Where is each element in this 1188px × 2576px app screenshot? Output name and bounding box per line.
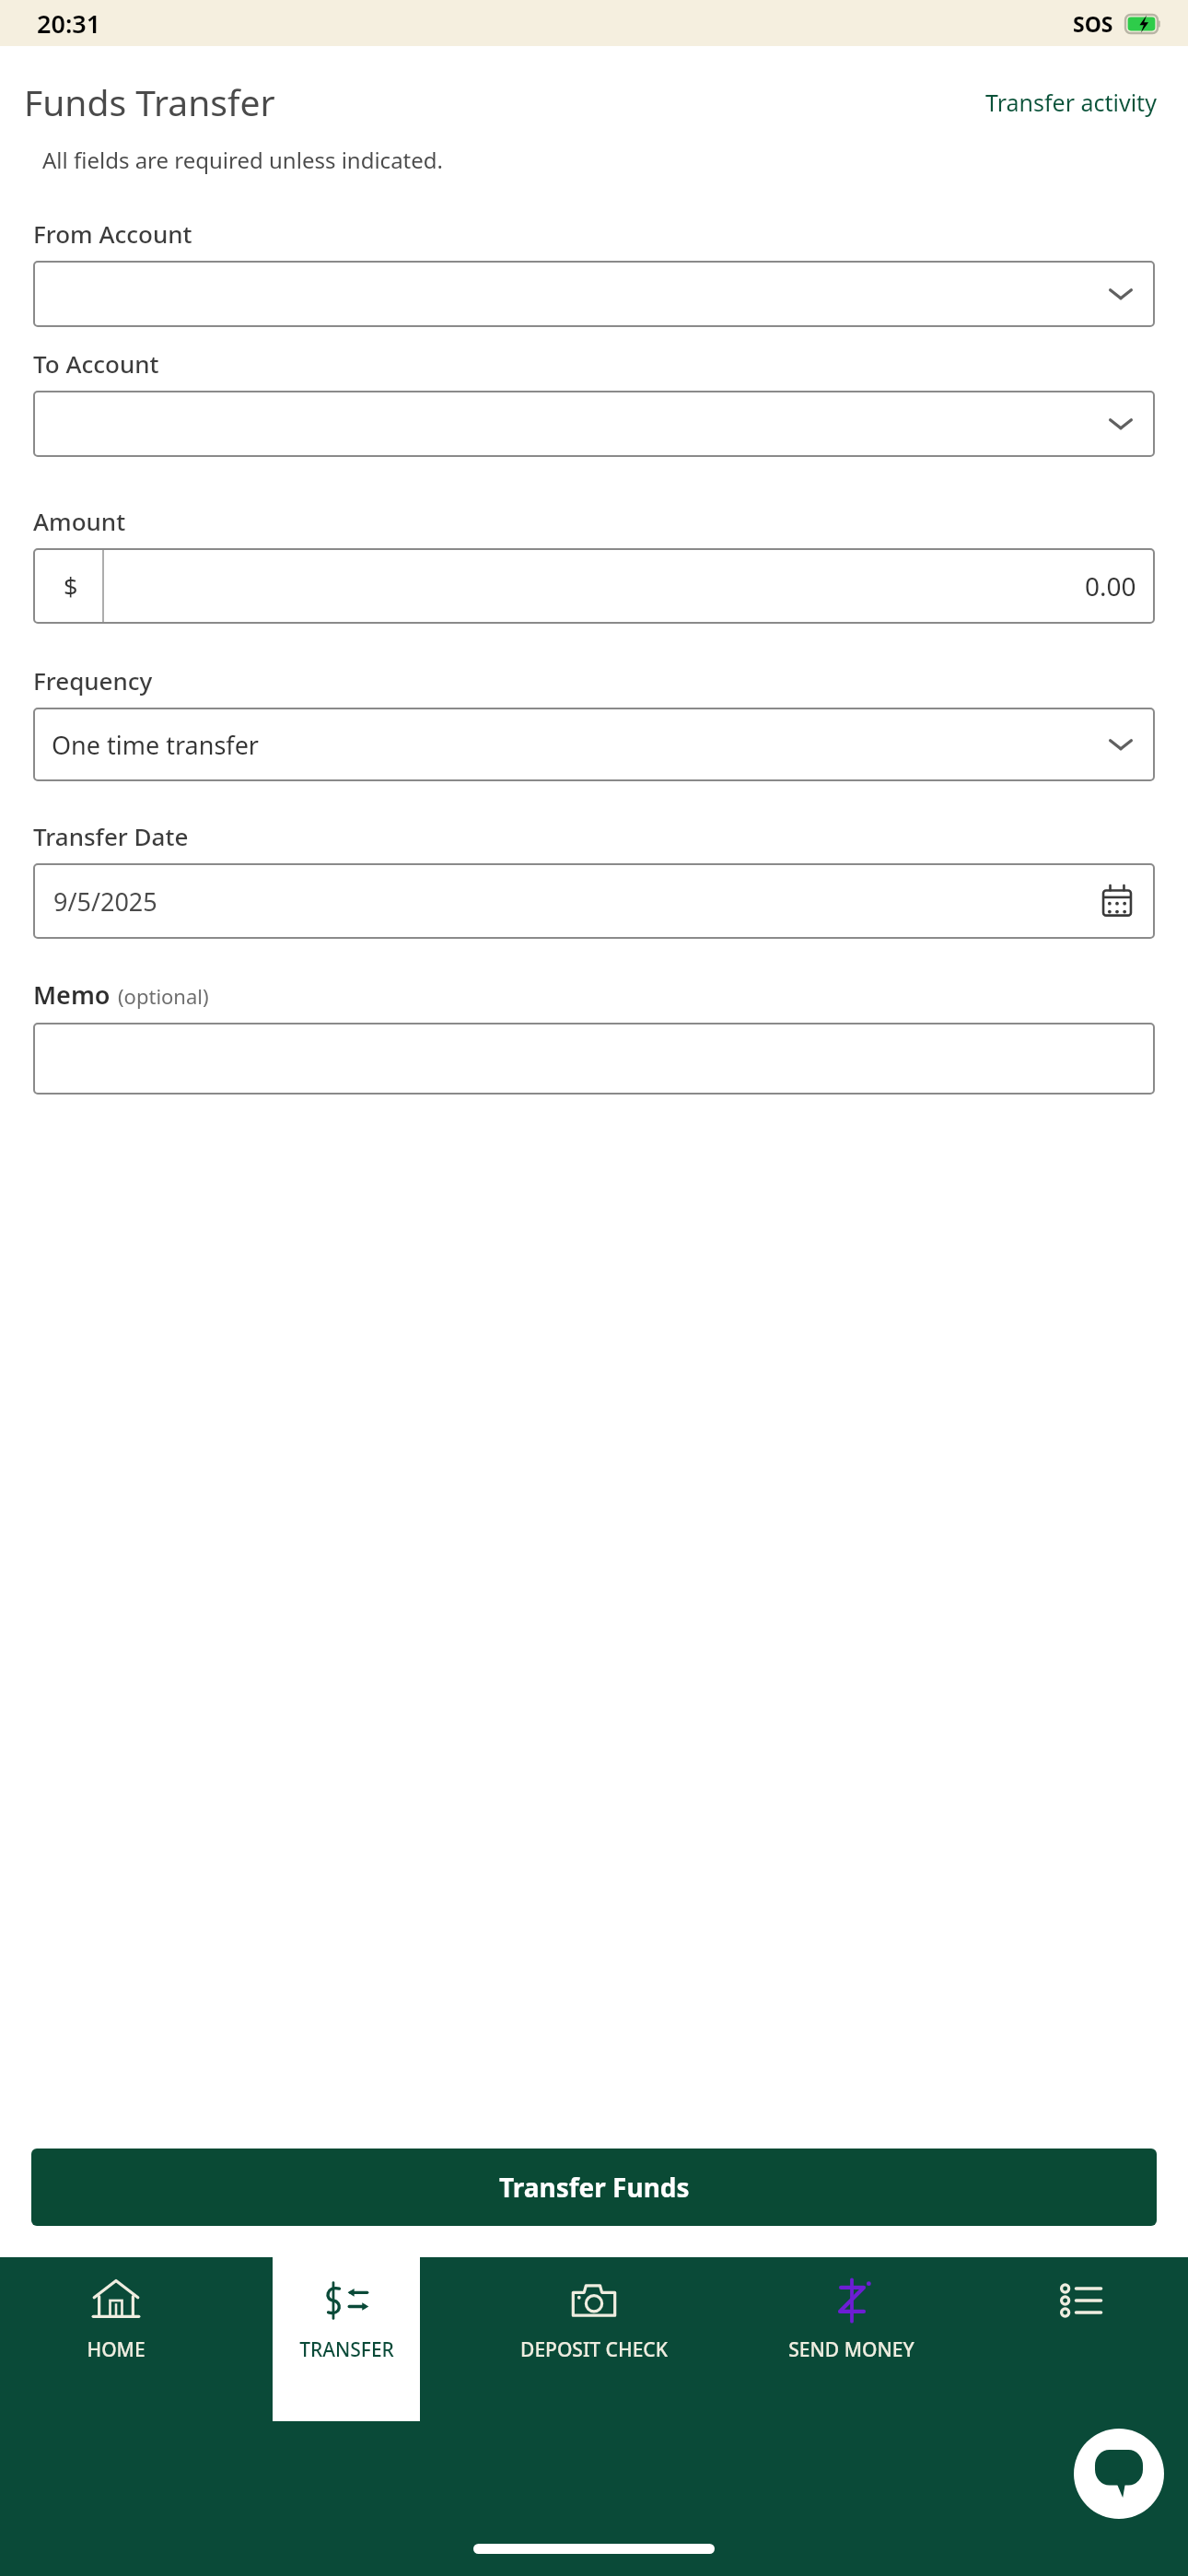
staticText: HOME	[87, 2336, 146, 2363]
button[interactable]: More options	[976, 2257, 1188, 2421]
staticText: One time transfer	[52, 728, 260, 762]
button[interactable]: Transfer Funds	[31, 2149, 1157, 2226]
button[interactable]: Home	[0, 2257, 231, 2421]
staticText: SOS	[1073, 9, 1113, 38]
staticText: All fields are required unless indicated…	[42, 145, 443, 175]
staticText: Transfer activity	[985, 87, 1157, 118]
staticText: TRANSFER	[299, 2336, 394, 2363]
staticText: Funds Transfer	[24, 77, 275, 126]
button[interactable]: Chat with us	[1074, 2429, 1164, 2519]
staticText: Transfer Date	[33, 820, 189, 852]
button[interactable]: Transfer activity	[982, 83, 1160, 122]
staticText: 20:31	[37, 6, 101, 41]
button[interactable]: $	[33, 548, 1155, 624]
staticText: From Account	[33, 217, 192, 250]
staticText: $	[64, 569, 78, 603]
staticText: Memo	[33, 978, 111, 1012]
staticText: SEND MONEY	[788, 2336, 914, 2363]
staticText: (optional)	[118, 982, 209, 1010]
staticText: To Account	[33, 347, 159, 380]
button[interactable]: Transfer date	[33, 863, 1155, 939]
staticText: DEPOSIT CHECK	[520, 2336, 668, 2363]
button[interactable]: Memo	[33, 1023, 1155, 1095]
staticText: 9/5/2025	[53, 884, 157, 919]
button[interactable]: Select account	[33, 391, 1155, 457]
button[interactable]: Transfer	[273, 2257, 420, 2421]
staticText: 0.00	[1085, 568, 1136, 603]
button[interactable]: Deposit check	[461, 2257, 727, 2421]
staticText: Amount	[33, 505, 126, 537]
button[interactable]: Select account	[33, 261, 1155, 327]
staticText: Frequency	[33, 664, 153, 697]
button[interactable]: Send money	[727, 2257, 976, 2421]
staticText: Transfer Funds	[499, 2170, 690, 2205]
button[interactable]: One time transfer	[33, 708, 1155, 781]
